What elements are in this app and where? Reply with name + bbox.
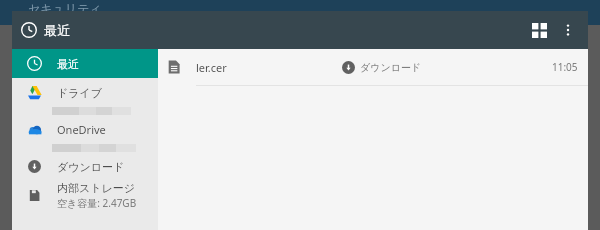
staticText: 最近 (57, 57, 79, 71)
staticText: ドライブ (57, 86, 103, 100)
staticText: 内部ストレージ (57, 181, 136, 195)
button[interactable]: Grid view (523, 14, 555, 46)
staticText: 11:05 (552, 60, 578, 74)
staticText: 最近 (44, 22, 70, 38)
button[interactable]: 最近 (12, 49, 158, 78)
staticText: ダウンロード (360, 61, 422, 74)
button[interactable]: More options (555, 17, 581, 43)
staticText: 空き容量: 2.47GB (57, 196, 137, 210)
staticText: セキュリティ (28, 1, 102, 16)
staticText: ダウンロード (57, 160, 125, 174)
button[interactable]: 最近 (12, 22, 78, 38)
button[interactable]: ler.cer (158, 49, 588, 85)
button[interactable]: ダウンロード (12, 152, 158, 181)
button[interactable]: ドライブ (12, 78, 158, 107)
staticText: OneDrive (57, 122, 106, 137)
button[interactable]: OneDrive (12, 115, 158, 144)
button[interactable]: 内部ストレージ (12, 181, 158, 210)
staticText: ler.cer (196, 60, 227, 75)
